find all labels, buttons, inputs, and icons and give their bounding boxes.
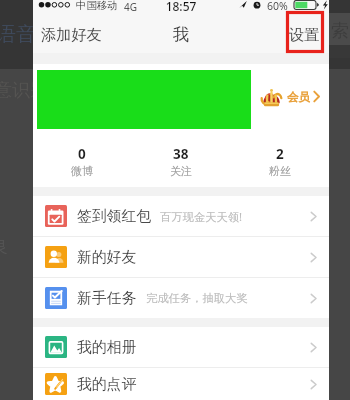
staticText: 38 [173,145,189,163]
button[interactable]: 我的点评 [33,368,329,400]
button[interactable]: 设置 [280,15,329,54]
staticText: 签到领红包 [77,207,151,226]
button[interactable]: 签到领红包 [33,196,329,236]
button[interactable]: 添加好友 [32,15,111,54]
staticText: 良 [0,236,8,257]
button[interactable]: 0 [33,145,131,178]
staticText: 18:57 [33,0,329,11]
button[interactable]: 会员 [261,86,320,107]
staticText: 百万现金天天领! [160,209,243,224]
staticText: 新手任务 [77,289,137,308]
staticText: 我的相册 [77,338,137,357]
staticText: 中国移动 [76,0,118,12]
staticText: 意识别 [0,79,48,102]
staticText: 添加好友 [41,25,102,44]
staticText: 我的点评 [77,375,137,394]
staticText: 新的好友 [77,248,137,267]
staticText: 索引 [331,20,350,43]
staticText: 0 [78,145,86,163]
button[interactable]: 新手任务 [33,278,329,318]
staticText: 语音 [0,22,36,47]
button[interactable]: 38 [131,145,230,178]
staticText: 60% [267,0,288,12]
staticText: 会员 [287,90,310,104]
button[interactable]: 2 [230,145,329,178]
button[interactable]: 我的相册 [33,327,329,367]
staticText: 关注 [170,164,192,178]
staticText: 设置 [289,25,320,44]
staticText: 4G [124,0,137,13]
staticText: 粉丝 [269,164,291,178]
staticText: 我 [173,24,190,45]
staticText: 2 [276,145,284,163]
staticText: 微博 [71,164,93,178]
staticText: 完成任务，抽取大奖 [146,291,248,305]
button[interactable]: 新的好友 [33,237,329,277]
